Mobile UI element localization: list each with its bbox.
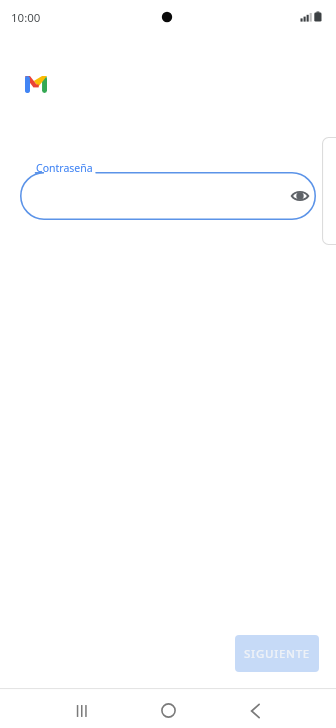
staticText: 10:00 [11,10,41,26]
button[interactable]: Inicio [144,693,192,728]
button[interactable]: SIGUIENTE [235,635,319,672]
button[interactable]: Recientes [57,693,105,728]
staticText: SIGUIENTE [244,646,310,662]
staticText: Contraseña [36,161,93,175]
button[interactable] [20,172,316,220]
button[interactable]: Atrás [231,693,279,728]
button[interactable]: Mostrar contraseña [280,176,320,216]
